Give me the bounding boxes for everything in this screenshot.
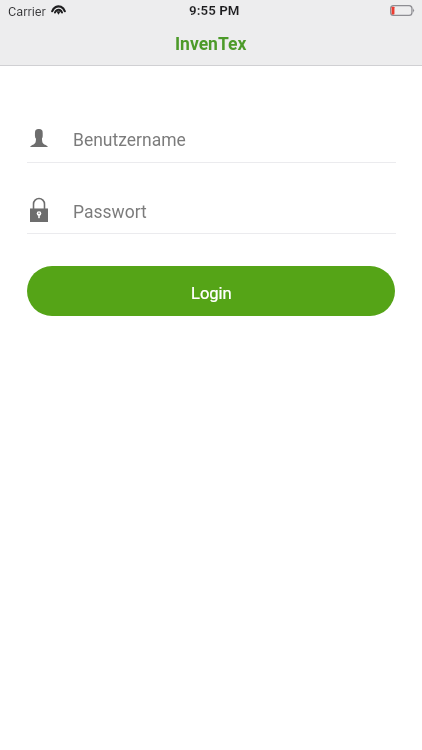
staticText: Benutzername bbox=[73, 130, 186, 151]
other: Wi-Fi bbox=[51, 3, 66, 14]
staticText: Passwort bbox=[73, 202, 147, 223]
button[interactable]: Benutzername eingeben bbox=[27, 126, 396, 163]
staticText: 9:55 PM bbox=[189, 3, 240, 19]
button[interactable]: Passwort eingeben bbox=[27, 196, 396, 234]
button[interactable]: Login bbox=[27, 266, 395, 316]
staticText: InvenTex bbox=[175, 34, 247, 55]
staticText: Carrier bbox=[8, 4, 46, 19]
staticText: Login bbox=[191, 284, 232, 303]
other: Battery low bbox=[390, 5, 415, 16]
